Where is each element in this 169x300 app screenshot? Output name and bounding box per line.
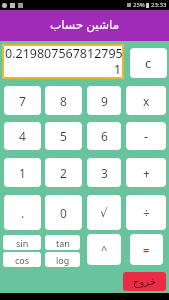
staticText: 2 <box>60 165 67 181</box>
staticText: 3 <box>101 165 108 181</box>
button[interactable]: cos <box>3 252 41 267</box>
button[interactable]: 6 <box>87 122 121 150</box>
button[interactable]: √ <box>87 195 121 230</box>
staticText: = <box>143 242 150 257</box>
button[interactable]: sin <box>3 235 41 250</box>
staticText: 23:33 <box>151 1 167 9</box>
staticText: tan <box>56 237 70 249</box>
button[interactable]: ^ <box>87 234 121 265</box>
button[interactable]: ÷ <box>126 195 166 230</box>
staticText: ماشین حساب <box>50 16 120 32</box>
button[interactable]: c <box>130 48 167 78</box>
button[interactable]: x <box>126 86 166 115</box>
staticText: c <box>145 54 152 72</box>
button[interactable]: - <box>126 122 166 150</box>
staticText: sin <box>16 237 29 249</box>
staticText: 0.219807567812795 <box>5 45 123 62</box>
staticText: 7 <box>19 93 26 109</box>
button[interactable]: tan <box>45 235 80 250</box>
staticText: . <box>21 205 25 221</box>
staticText: √ <box>100 206 108 220</box>
staticText: 1 <box>114 61 122 78</box>
staticText: 9 <box>101 93 108 109</box>
staticText: ÷ <box>143 205 150 221</box>
staticText: - <box>144 128 148 144</box>
button[interactable]: 7 <box>4 86 41 115</box>
staticText: 5 <box>60 128 67 144</box>
button[interactable]: 2 <box>45 158 82 187</box>
button[interactable]: 9 <box>87 86 121 115</box>
button[interactable]: خروج <box>123 272 166 291</box>
staticText: 6 <box>101 128 108 144</box>
staticText: 8 <box>60 93 67 109</box>
button[interactable]: . <box>4 195 41 230</box>
staticText: خروج <box>133 276 156 288</box>
staticText: 25% <box>133 1 145 9</box>
staticText: 1 <box>19 165 26 181</box>
button[interactable]: 5 <box>45 122 82 150</box>
staticText: 0 <box>60 205 67 221</box>
button[interactable]: 1 <box>4 158 41 187</box>
button[interactable]: 0 <box>45 195 82 230</box>
staticText: + <box>143 165 150 181</box>
staticText: log <box>56 254 70 266</box>
button[interactable]: 4 <box>4 122 41 150</box>
staticText: 4 <box>19 128 26 144</box>
staticText: ^ <box>101 242 108 257</box>
button[interactable]: 3 <box>87 158 121 187</box>
button[interactable]: = <box>130 234 163 265</box>
staticText: x <box>143 93 150 109</box>
button[interactable]: log <box>45 252 80 267</box>
staticText: cos <box>15 254 30 266</box>
button[interactable]: 8 <box>45 86 82 115</box>
button[interactable]: + <box>126 158 166 187</box>
